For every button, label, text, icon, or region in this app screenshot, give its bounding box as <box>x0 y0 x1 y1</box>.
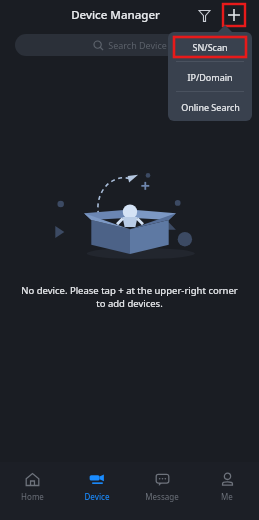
staticText: Device Manager <box>71 7 160 23</box>
staticText: Home <box>21 491 44 502</box>
staticText: Message <box>145 491 179 502</box>
staticText: Search Device <box>108 39 167 51</box>
button[interactable]: Me <box>194 470 259 520</box>
button[interactable]: Add device <box>222 3 246 27</box>
staticText: Device <box>84 491 110 502</box>
button[interactable]: Device <box>64 470 129 520</box>
button[interactable]: IP/Domain <box>168 62 252 91</box>
staticText: IP/Domain <box>187 71 233 83</box>
staticText: No device. Please tap + at the upper-rig… <box>16 284 243 310</box>
button[interactable]: Search Device <box>15 34 244 56</box>
button[interactable]: Home <box>0 470 64 520</box>
button[interactable]: SN/Scan <box>168 32 252 61</box>
button[interactable]: Filter <box>192 3 216 27</box>
button[interactable]: Message <box>129 470 194 520</box>
staticText: Me <box>221 491 233 502</box>
staticText: SN/Scan <box>192 41 228 53</box>
staticText: Online Search <box>181 101 240 113</box>
button[interactable]: Online Search <box>168 92 252 121</box>
